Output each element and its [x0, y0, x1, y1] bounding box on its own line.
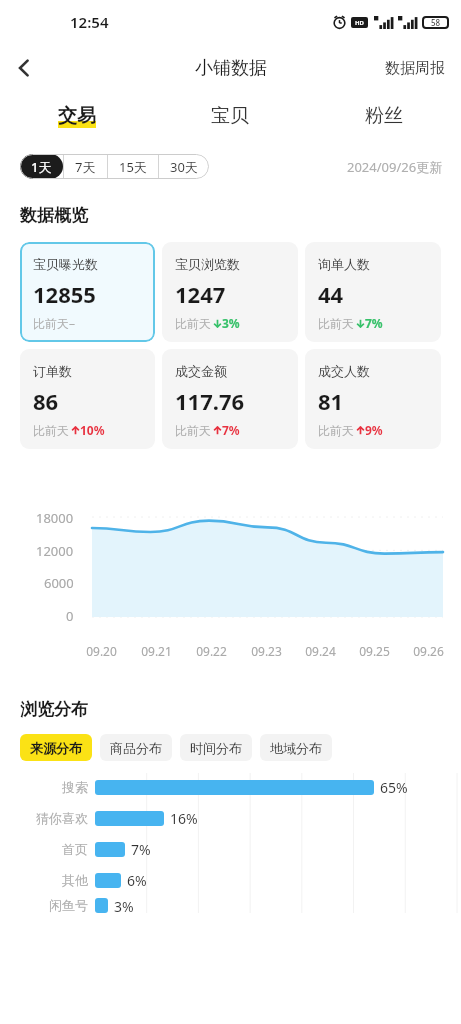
- staticText: 09.21: [141, 643, 172, 659]
- staticText: 58: [431, 17, 441, 28]
- staticText: 数据周报: [385, 59, 445, 78]
- button[interactable]: 宝贝曝光数: [20, 242, 155, 342]
- staticText: 宝贝曝光数: [33, 256, 98, 272]
- staticText: 宝贝浏览数: [175, 256, 240, 272]
- staticText: 10%: [80, 422, 105, 438]
- staticText: 其他: [62, 872, 88, 888]
- staticText: HD: [355, 19, 364, 27]
- staticText: 09.24: [305, 643, 336, 659]
- button[interactable]: 猜你喜欢: [0, 804, 461, 832]
- button[interactable]: 时间分布: [180, 734, 252, 761]
- staticText: 16%: [170, 809, 198, 828]
- staticText: 117.76: [175, 386, 245, 416]
- button[interactable]: 订单数: [20, 349, 155, 449]
- staticText: 闲鱼号: [49, 897, 88, 913]
- staticText: 30天: [170, 158, 198, 176]
- staticText: 12000: [36, 542, 74, 560]
- button[interactable]: 交易: [0, 92, 153, 140]
- button[interactable]: 成交金额: [162, 349, 298, 449]
- button[interactable]: 数据周报: [369, 49, 461, 88]
- staticText: 时间分布: [190, 740, 242, 756]
- button[interactable]: 来源分布: [20, 734, 92, 761]
- button[interactable]: 宝贝浏览数: [162, 242, 298, 342]
- staticText: 来源分布: [30, 740, 82, 756]
- staticText: 12:54: [70, 12, 109, 32]
- staticText: 2024/09/26更新: [347, 158, 443, 176]
- staticText: 询单人数: [318, 256, 370, 272]
- staticText: 猜你喜欢: [36, 810, 88, 826]
- staticText: 比前天: [33, 423, 69, 438]
- staticText: 1天: [31, 158, 52, 176]
- staticText: 9%: [365, 422, 383, 438]
- staticText: 18000: [36, 509, 74, 527]
- staticText: 7%: [131, 840, 151, 859]
- staticText: 小铺数据: [195, 57, 267, 80]
- staticText: 比前天: [175, 423, 211, 438]
- button[interactable]: 地域分布: [260, 734, 332, 761]
- staticText: 7天: [75, 158, 96, 176]
- staticText: 09.26: [413, 643, 444, 659]
- staticText: 数据概览: [20, 205, 88, 226]
- button[interactable]: 搜索: [0, 773, 461, 801]
- staticText: 12855: [33, 279, 96, 309]
- staticText: 商品分布: [110, 740, 162, 756]
- button[interactable]: 30天: [159, 154, 209, 179]
- staticText: 粉丝: [365, 104, 403, 128]
- button[interactable]: 其他: [0, 866, 461, 894]
- staticText: 7%: [365, 315, 383, 331]
- staticText: –: [69, 315, 76, 331]
- staticText: 首页: [62, 841, 88, 857]
- button[interactable]: 首页: [0, 835, 461, 863]
- staticText: 成交金额: [175, 363, 227, 379]
- button[interactable]: 询单人数: [305, 242, 441, 342]
- staticText: 成交人数: [318, 363, 370, 379]
- staticText: 宝贝: [211, 104, 249, 128]
- button[interactable]: 商品分布: [100, 734, 172, 761]
- staticText: 比前天: [175, 316, 211, 331]
- button[interactable]: 闲鱼号: [0, 897, 461, 913]
- staticText: 86: [33, 386, 59, 416]
- staticText: 0: [66, 607, 74, 625]
- staticText: 09.25: [359, 643, 390, 659]
- staticText: 浏览分布: [20, 699, 88, 720]
- button[interactable]: 7天: [64, 154, 107, 179]
- staticText: 6000: [44, 574, 74, 592]
- staticText: 65%: [380, 778, 408, 797]
- button[interactable]: 1天: [20, 154, 63, 179]
- button[interactable]: Back: [0, 44, 48, 92]
- staticText: 1247: [175, 279, 226, 309]
- staticText: 09.22: [196, 643, 227, 659]
- staticText: 09.20: [86, 643, 117, 659]
- staticText: 搜索: [62, 779, 88, 795]
- button[interactable]: 成交人数: [305, 349, 441, 449]
- staticText: 6%: [127, 871, 147, 890]
- staticText: 3%: [222, 315, 240, 331]
- staticText: 比前天: [318, 316, 354, 331]
- button[interactable]: 15天: [108, 154, 158, 179]
- staticText: 地域分布: [270, 740, 322, 756]
- staticText: 比前天: [33, 316, 69, 331]
- staticText: 81: [318, 386, 344, 416]
- staticText: 比前天: [318, 423, 354, 438]
- button[interactable]: 宝贝: [153, 92, 307, 140]
- staticText: 7%: [222, 422, 240, 438]
- staticText: 交易: [58, 104, 96, 128]
- button[interactable]: 粉丝: [307, 92, 461, 140]
- staticText: 订单数: [33, 363, 72, 379]
- staticText: 15天: [119, 158, 147, 176]
- staticText: 44: [318, 279, 344, 309]
- staticText: 3%: [114, 897, 134, 913]
- staticText: 09.23: [251, 643, 282, 659]
